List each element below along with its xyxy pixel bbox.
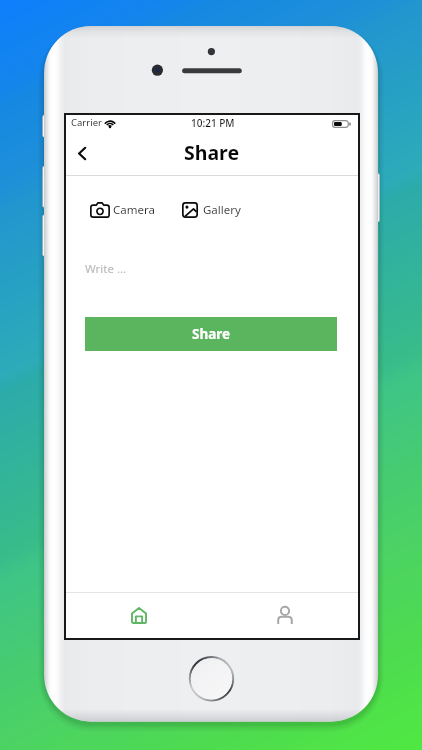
staticText: Gallery	[203, 202, 241, 218]
staticText: 10:21 PM	[191, 116, 235, 130]
button[interactable]: Home	[66, 593, 212, 638]
button[interactable]: Camera	[90, 202, 155, 218]
staticText: Camera	[113, 202, 155, 218]
button[interactable]: Gallery	[182, 202, 241, 218]
staticText: Share	[184, 139, 240, 166]
button[interactable]: Share	[85, 317, 337, 351]
button[interactable]: Back	[70, 138, 94, 168]
staticText: Share	[192, 325, 231, 343]
staticText: Write ...	[85, 261, 127, 277]
button[interactable]: Profile	[212, 593, 358, 638]
staticText: Carrier	[71, 116, 102, 129]
